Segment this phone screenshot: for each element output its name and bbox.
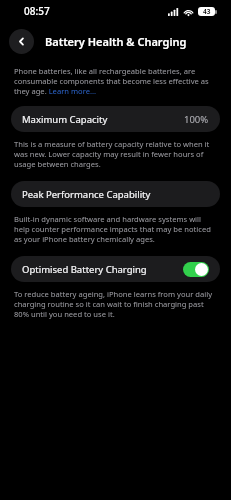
staticText: Battery Health & Charging (45, 34, 187, 49)
button[interactable]: Back (9, 29, 34, 54)
staticText: Peak Performance Capability (22, 188, 151, 201)
staticText: Phone batteries, like all rechargeable b… (14, 66, 215, 96)
staticText: 43 (203, 7, 211, 16)
staticText: Optimised Battery Charging (22, 263, 147, 276)
staticText: This is a measure of battery capacity re… (14, 139, 215, 169)
button[interactable]: Optimised Battery Charging (11, 256, 220, 282)
button[interactable]: Optimised Battery Charging toggle (183, 262, 209, 277)
staticText: 100% (184, 113, 209, 126)
staticText: To reduce battery ageing, iPhone learns … (14, 289, 215, 319)
staticText: Maximum Capacity (22, 113, 108, 126)
staticText: Built-in dynamic software and hardware s… (14, 214, 215, 244)
button[interactable]: Peak Performance Capability (11, 181, 220, 207)
staticText: 08:57 (24, 4, 50, 18)
button[interactable]: Maximum Capacity (11, 106, 220, 132)
